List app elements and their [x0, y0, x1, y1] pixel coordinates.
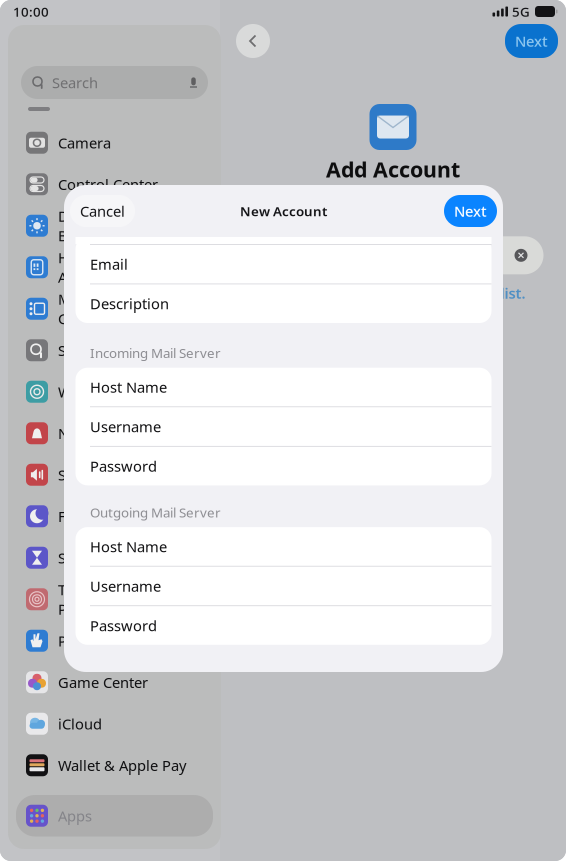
staticText: Next: [454, 201, 487, 221]
button[interactable]: Touch ID & Passcode: [16, 578, 213, 620]
staticText: Game Center: [58, 672, 148, 692]
button[interactable]: Search: [16, 329, 213, 371]
button[interactable]: Description: [75, 284, 491, 323]
button[interactable]: Password: [75, 606, 491, 645]
button[interactable]: Multitasking & Gestures: [16, 288, 213, 329]
staticText: Username: [90, 576, 161, 596]
staticText: iCloud: [58, 714, 102, 733]
staticText: Touch ID & Passcode: [58, 580, 134, 619]
staticText: Password: [90, 616, 157, 635]
staticText: New Account: [240, 202, 327, 220]
staticText: Wallet & Apple Pay: [58, 755, 186, 775]
button[interactable]: Home Screen & App Library: [16, 246, 213, 288]
staticText: Add Account: [326, 155, 460, 183]
staticText: Search: [58, 340, 104, 360]
button[interactable]: Wallet & Apple Pay: [16, 744, 213, 786]
staticText: Control Center: [58, 174, 158, 194]
staticText: Host Name: [90, 377, 167, 397]
staticText: Search: [52, 73, 98, 92]
staticText: Wallpaper: [58, 382, 127, 401]
button[interactable]: Password: [75, 447, 491, 485]
staticText: 10:00: [13, 3, 49, 20]
staticText: Privacy & Security: [58, 631, 179, 650]
button[interactable]: Cancel: [70, 195, 135, 227]
button[interactable]: Email: [75, 245, 491, 283]
staticText: Multitasking & Gestures: [58, 289, 158, 328]
staticText: Notifications: [58, 423, 145, 443]
button[interactable]: Host Name: [75, 527, 491, 566]
button[interactable]: Username: [75, 567, 491, 605]
staticText: Description: [90, 294, 169, 313]
button[interactable]: Screen Time: [16, 537, 213, 578]
staticText: 5G: [512, 3, 530, 20]
button[interactable]: Privacy & Security: [16, 620, 213, 661]
button[interactable]: Username: [75, 407, 491, 446]
button[interactable]: Control Center: [16, 163, 213, 205]
staticText: Home Screen & App Library: [58, 248, 165, 287]
staticText: list.: [500, 283, 525, 303]
staticText: Screen Time: [58, 548, 142, 567]
button[interactable]: iCloud: [16, 703, 213, 744]
staticText: Next: [515, 31, 548, 51]
staticText: Incoming Mail Server: [90, 344, 221, 362]
button[interactable]: Sounds & Haptics: [16, 454, 213, 495]
button[interactable]: Back: [236, 24, 270, 58]
button[interactable]: Notifications: [16, 412, 213, 454]
button[interactable]: Host Name: [75, 368, 491, 406]
staticText: Camera: [58, 133, 111, 152]
staticText: Password: [90, 456, 157, 476]
staticText: Email: [90, 254, 128, 274]
button[interactable]: Game Center: [16, 661, 213, 703]
staticText: Outgoing Mail Server: [90, 503, 221, 521]
button[interactable]: Display & Brightness: [16, 205, 213, 246]
staticText: Apps: [58, 806, 92, 825]
staticText: Cancel: [80, 201, 125, 221]
button[interactable]: Camera: [16, 122, 213, 163]
button[interactable]: Focus: [16, 495, 213, 537]
staticText: Sounds & Haptics: [58, 465, 179, 484]
staticText: Display & Brightness: [58, 206, 132, 245]
button[interactable]: Apps: [16, 795, 213, 836]
button[interactable]: Next: [505, 24, 558, 58]
staticText: Username: [90, 417, 161, 436]
button[interactable]: Next: [444, 195, 497, 227]
staticText: Host Name: [90, 537, 167, 556]
staticText: Focus: [58, 506, 98, 526]
button[interactable]: Wallpaper: [16, 371, 213, 412]
